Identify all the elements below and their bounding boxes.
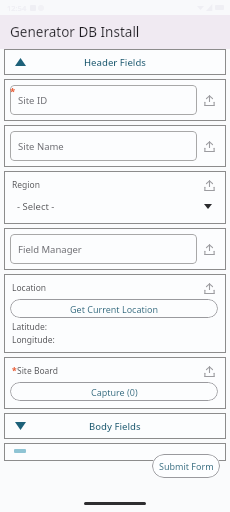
- button[interactable]: Site ID: [10, 85, 197, 115]
- staticText: Site Name: [18, 140, 64, 153]
- button[interactable]: Upload: [201, 363, 217, 379]
- button[interactable]: Site Name: [10, 131, 197, 161]
- button[interactable]: Upload: [201, 177, 217, 193]
- staticText: Site ID: [18, 94, 48, 107]
- staticText: Body Fields: [89, 420, 141, 433]
- staticText: Site Board: [17, 365, 58, 377]
- staticText: *: [12, 365, 17, 377]
- staticText: Field Manager: [18, 243, 82, 256]
- button[interactable]: Upload: [201, 241, 217, 257]
- button[interactable]: Header Fields: [4, 49, 226, 75]
- staticText: Submit Form: [159, 460, 214, 472]
- staticText: *: [10, 85, 16, 98]
- staticText: Latitude:: [12, 321, 48, 333]
- button[interactable]: - Select -: [10, 197, 220, 216]
- button[interactable]: Field Manager: [10, 234, 197, 264]
- button[interactable]: Capture (0): [10, 382, 218, 401]
- button[interactable]: Body Fields: [4, 413, 226, 439]
- staticText: Header Fields: [84, 56, 146, 69]
- staticText: Get Current Location: [70, 303, 159, 315]
- staticText: 12:54: [7, 3, 27, 13]
- button[interactable]: Upload: [201, 92, 217, 108]
- staticText: Capture (0): [91, 386, 138, 398]
- button[interactable]: Submit Form: [152, 454, 220, 478]
- staticText: Region: [12, 179, 40, 191]
- button[interactable]: Get Current Location: [10, 299, 218, 318]
- staticText: Generator DB Install: [10, 23, 140, 41]
- staticText: - Select -: [17, 200, 55, 213]
- button[interactable]: Upload: [201, 280, 217, 296]
- staticText: Location: [12, 282, 47, 294]
- staticText: Longitude:: [12, 334, 55, 346]
- button[interactable]: Upload: [201, 138, 217, 154]
